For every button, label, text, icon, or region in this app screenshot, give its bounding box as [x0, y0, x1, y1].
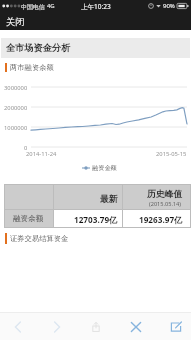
button[interactable]: Back	[5, 313, 31, 340]
staticText: 融资金额	[92, 164, 117, 172]
staticText: (2015.05.14)	[149, 200, 181, 208]
staticText: 2000000	[4, 104, 28, 112]
staticText: 12703.79亿	[74, 214, 118, 225]
staticText: 19263.97亿	[139, 214, 183, 225]
staticText: 2014-11-24	[26, 150, 57, 158]
staticText: 3000000	[4, 84, 28, 92]
staticText: 4G	[47, 2, 55, 10]
staticText: 0	[24, 144, 28, 152]
staticText: 全市场资金分析	[6, 42, 71, 54]
staticText: 关闭	[6, 16, 25, 27]
staticText: 1000000	[4, 124, 28, 132]
staticText: 最新	[100, 194, 118, 205]
staticText: 两市融资余额	[10, 63, 54, 72]
button[interactable]: Close	[123, 313, 149, 340]
button[interactable]: Open in browser	[163, 313, 189, 340]
staticText: 历史峰值	[147, 189, 183, 200]
staticText: 证券交易结算资金	[10, 234, 69, 243]
staticText: 中国电信	[21, 3, 45, 10]
button[interactable]: Share	[83, 313, 109, 340]
staticText: 上午10:23	[81, 2, 111, 11]
button[interactable]: Forward	[44, 313, 70, 340]
staticText: 90%	[163, 2, 175, 10]
staticText: 2015-05-15	[156, 150, 187, 158]
button[interactable]: 关闭	[4, 14, 27, 29]
staticText: 融资余额	[13, 214, 44, 224]
